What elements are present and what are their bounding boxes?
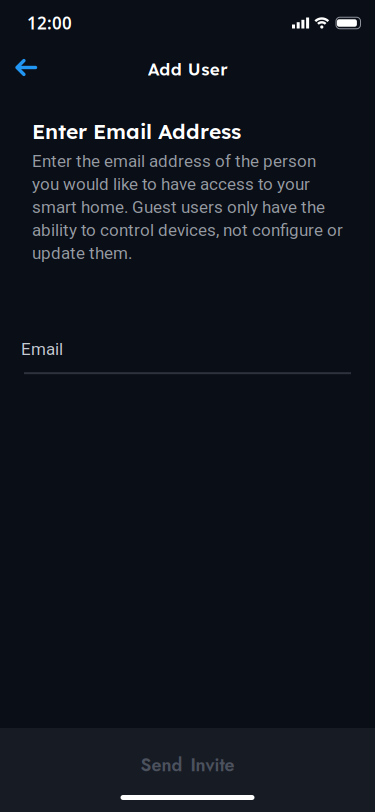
- staticText: Enter the email address of the person yo…: [32, 151, 343, 263]
- staticText: 12:00: [27, 12, 72, 34]
- button[interactable]: Send: [0, 728, 375, 778]
- staticText: Invite: [190, 752, 234, 778]
- staticText: Enter Email Address: [32, 118, 241, 144]
- staticText: Send: [140, 752, 182, 778]
- button[interactable]: Back: [0, 48, 37, 88]
- staticText: Add User: [148, 58, 227, 80]
- staticText: Email: [21, 339, 63, 359]
